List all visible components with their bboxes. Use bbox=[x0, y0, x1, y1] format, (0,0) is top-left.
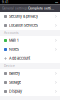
button[interactable]: General settings bbox=[0, 5, 28, 11]
staticText: Device bbox=[4, 64, 15, 68]
button[interactable]: Mail 1 bbox=[0, 36, 60, 45]
button[interactable]: Storage bbox=[0, 78, 60, 87]
button[interactable]: Notes bbox=[0, 45, 60, 54]
staticText: Storage bbox=[9, 80, 21, 85]
button[interactable]: Security & privacy bbox=[0, 12, 60, 21]
staticText: Security & privacy bbox=[9, 14, 38, 19]
staticText: Notes bbox=[9, 47, 19, 52]
staticText: Add account bbox=[9, 56, 30, 61]
button[interactable]: Battery bbox=[0, 69, 60, 78]
staticText: Mail 1 bbox=[9, 38, 19, 43]
button[interactable]: Display bbox=[0, 87, 60, 96]
button[interactable]: Location services bbox=[0, 21, 60, 30]
staticText: Display bbox=[9, 89, 22, 94]
staticText: Complete settings bbox=[28, 6, 54, 10]
button[interactable]: Add account bbox=[0, 54, 60, 63]
staticText: Location services bbox=[9, 23, 38, 28]
staticText: Battery bbox=[9, 71, 20, 76]
staticText: General settings bbox=[2, 6, 28, 10]
staticText: 9:41 bbox=[2, 1, 8, 4]
staticText: Accounts bbox=[4, 31, 19, 35]
staticText: ▪▪▪ bbox=[55, 1, 58, 4]
